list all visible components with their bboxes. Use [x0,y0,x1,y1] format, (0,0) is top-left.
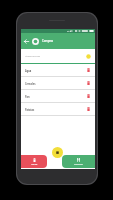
button[interactable]: App logo [32,38,39,45]
staticText: Compras [42,39,54,43]
button[interactable]: Delete Patatas [84,105,92,113]
staticText: Patatas [25,108,84,111]
button[interactable]: Back [22,37,31,46]
button[interactable]: Delete Cereales [84,79,92,87]
staticText: Pan [25,95,84,98]
button[interactable]: Delete Agua [84,66,92,74]
button[interactable]: Agua [21,64,95,76]
button[interactable]: Shopping cart [52,147,63,158]
staticText: Cereales [25,82,84,85]
staticText: Añadir artículo [25,55,84,58]
staticText: Vaciar [31,163,38,166]
button[interactable]: Vaciar [21,155,47,168]
button[interactable]: Añadir artículo [21,49,95,63]
button[interactable]: Patatas [21,103,95,115]
button[interactable]: Cereales [21,77,95,89]
button[interactable]: Pan [21,90,95,102]
button[interactable]: Delete Pan [84,92,92,100]
staticText: Agua [25,69,84,72]
staticText: Guardar [74,163,83,166]
button[interactable]: Guardar [62,155,95,168]
button[interactable]: Add item [84,52,92,60]
